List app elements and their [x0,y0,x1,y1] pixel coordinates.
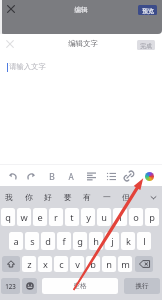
staticText: h [93,235,99,248]
button[interactable]: r [49,208,63,226]
button[interactable]: i [113,208,127,226]
button[interactable]: s [25,232,39,250]
staticText: m [121,258,130,271]
staticText: 空格 [73,282,87,290]
button[interactable]: c [54,256,68,272]
button[interactable]: Redo [22,167,40,185]
button[interactable]: x [38,256,52,272]
button[interactable]: Backspace [135,256,153,272]
button[interactable]: 123 [1,278,20,294]
button[interactable]: 要 [58,186,77,207]
staticText: B [49,170,55,182]
button[interactable]: p [145,208,159,226]
button[interactable]: f [57,232,71,250]
button[interactable]: o [129,208,143,226]
staticText: f [62,235,66,248]
staticText: A [68,171,74,182]
button[interactable]: a [9,232,23,250]
staticText: b [90,258,96,271]
button[interactable]: b [86,256,100,272]
button[interactable]: g [73,232,87,250]
staticText: x [43,258,48,271]
button[interactable]: v [70,256,84,272]
staticText: 完成 [140,42,152,49]
staticText: w [20,211,28,224]
staticText: a [13,235,19,248]
staticText: n [106,258,112,271]
button[interactable]: 换行 [124,278,160,294]
button[interactable]: More suggestions [146,190,160,204]
button[interactable]: l [137,232,151,250]
button[interactable]: w [17,208,31,226]
button[interactable]: 但 [116,186,135,207]
button[interactable]: Undo [4,167,22,185]
button[interactable]: Colour [140,167,158,185]
button[interactable]: j [105,232,119,250]
staticText: 你 [25,192,33,202]
staticText: 123 [5,282,16,290]
button[interactable]: Link [120,167,138,185]
button[interactable]: z [22,256,36,272]
staticText: d [45,235,51,248]
staticText: s [30,235,35,248]
staticText: 请输入文字 [9,62,46,71]
button[interactable]: Shift [2,256,20,272]
button[interactable]: m [118,256,132,272]
button[interactable]: 好 [38,186,57,207]
button[interactable]: Emoji [22,278,37,294]
button[interactable]: Text style [62,167,80,185]
button[interactable]: 一 [97,186,116,207]
button[interactable]: n [102,256,116,272]
staticText: 要 [64,192,72,202]
staticText: 换行 [135,282,149,290]
staticText: g [77,235,83,248]
staticText: e [37,211,43,224]
staticText: c [59,258,64,271]
button[interactable]: h [89,232,103,250]
staticText: i [119,211,122,224]
button[interactable]: Close [3,1,18,16]
button[interactable]: Dismiss [3,37,17,51]
button[interactable]: 有 [77,186,96,207]
button[interactable]: Bullet list [102,167,120,185]
staticText: 有 [83,192,91,202]
staticText: 一 [103,192,111,202]
staticText: r [54,211,58,224]
staticText: u [101,211,107,224]
button[interactable]: u [97,208,111,226]
staticText: q [5,211,11,224]
staticText: 预览 [142,7,154,14]
staticText: 但 [122,192,130,202]
staticText: k [126,235,131,248]
button[interactable]: t [65,208,79,226]
button[interactable]: d [41,232,55,250]
button[interactable]: y [81,208,95,226]
staticText: j [111,235,114,248]
button[interactable]: 预览 [138,5,157,15]
staticText: 我 [5,192,13,202]
button[interactable]: 我 [0,186,18,207]
button[interactable]: Bold [43,167,61,185]
staticText: t [70,211,74,224]
staticText: o [133,211,139,224]
button[interactable]: e [33,208,47,226]
staticText: p [149,211,155,224]
button[interactable]: 你 [19,186,38,207]
button[interactable]: Align left [82,167,100,185]
staticText: v [75,258,80,271]
staticText: z [27,258,32,271]
staticText: 好 [44,192,52,202]
button[interactable]: 完成 [137,40,155,50]
staticText: y [86,211,91,224]
button[interactable]: 空格 [42,278,118,294]
staticText: l [143,235,146,248]
staticText: 编辑 [74,6,88,14]
button[interactable]: q [1,208,15,226]
button[interactable]: k [121,232,135,250]
staticText: 编辑文字 [68,39,98,48]
